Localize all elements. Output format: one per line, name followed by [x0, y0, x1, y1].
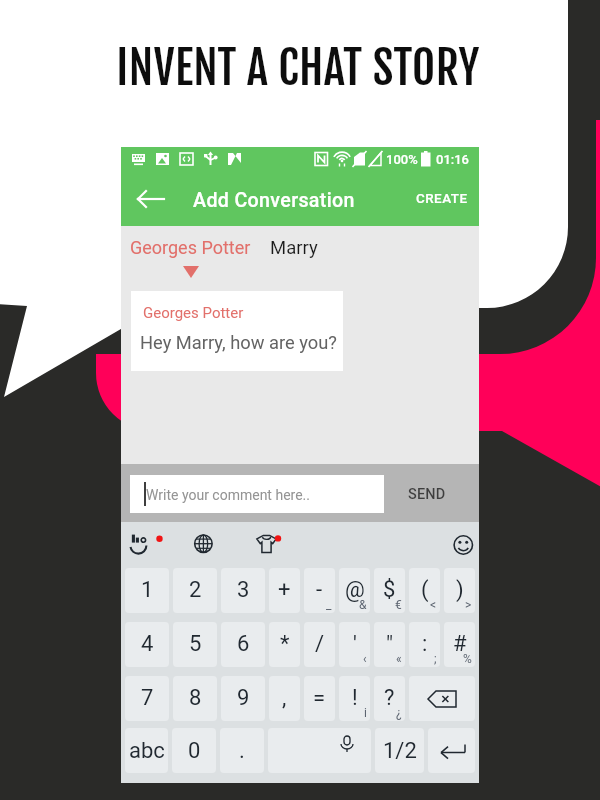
staticText: abc: [129, 738, 165, 764]
button[interactable]: @: [339, 568, 370, 613]
button[interactable]: Marry: [267, 237, 321, 259]
button[interactable]: Keyboard settings: [126, 528, 166, 556]
staticText: /: [315, 631, 325, 657]
staticText: Georges Potter: [130, 237, 251, 258]
button[interactable]: =: [304, 676, 335, 721]
staticText: 9: [237, 685, 250, 711]
button[interactable]: ): [444, 568, 475, 613]
staticText: ;: [434, 652, 437, 666]
button[interactable]: 3: [221, 568, 265, 613]
staticText: <: [430, 598, 437, 612]
staticText: 1/2: [383, 738, 417, 764]
staticText: +: [278, 577, 291, 603]
button[interactable]: Backspace: [409, 676, 475, 721]
staticText: .: [239, 738, 245, 764]
staticText: 7: [141, 685, 154, 711]
staticText: 3: [237, 577, 250, 603]
button[interactable]: CREATE: [405, 181, 479, 217]
button[interactable]: ?: [374, 676, 405, 721]
button[interactable]: Back: [135, 183, 167, 215]
button[interactable]: 6: [221, 622, 265, 667]
staticText: #: [453, 631, 467, 657]
staticText: CREATE: [416, 191, 468, 207]
button[interactable]: #: [444, 622, 475, 667]
staticText: i: [364, 706, 367, 720]
staticText: 1: [141, 577, 154, 603]
button[interactable]: 4: [125, 622, 169, 667]
button[interactable]: 8: [173, 676, 217, 721]
staticText: SEND: [408, 486, 446, 503]
staticText: Marry: [270, 237, 318, 259]
button[interactable]: !: [339, 676, 370, 721]
button[interactable]: $: [374, 568, 405, 613]
button[interactable]: SEND: [402, 482, 452, 507]
button[interactable]: Change language: [183, 530, 215, 558]
staticText: 2: [189, 577, 202, 603]
button[interactable]: Emoji: [451, 530, 481, 560]
staticText: =: [313, 685, 326, 711]
button[interactable]: abc: [125, 728, 168, 773]
button[interactable]: ": [374, 622, 405, 667]
staticText: Write your comment here..: [146, 487, 310, 503]
staticText: :: [422, 631, 428, 657]
button[interactable]: 2: [173, 568, 217, 613]
button[interactable]: Space: [268, 728, 371, 773]
staticText: INVENT A CHAT STORY: [0, 40, 598, 97]
button[interactable]: 0: [172, 728, 216, 773]
button[interactable]: ': [339, 622, 370, 667]
staticText: @: [345, 577, 365, 603]
staticText: &: [359, 598, 367, 612]
staticText: $: [383, 577, 396, 603]
staticText: Add Conversation: [193, 189, 355, 212]
staticText: 6: [237, 631, 250, 657]
button[interactable]: Georges Potter: [131, 291, 343, 371]
staticText: ,: [282, 685, 287, 711]
staticText: ?: [384, 685, 395, 711]
staticText: %: [463, 652, 472, 666]
staticText: Georges Potter: [143, 304, 244, 322]
staticText: 4: [141, 631, 154, 657]
button[interactable]: 9: [221, 676, 265, 721]
staticText: 8: [189, 685, 202, 711]
button[interactable]: .: [220, 728, 264, 773]
button[interactable]: Themes: [249, 528, 289, 558]
staticText: 01:16: [436, 152, 470, 167]
button[interactable]: 1/2: [375, 728, 424, 773]
button[interactable]: Write your comment here..: [130, 475, 384, 513]
staticText: !: [352, 685, 358, 711]
staticText: ): [456, 577, 464, 603]
staticText: ‹: [363, 652, 367, 666]
button[interactable]: Enter: [428, 728, 475, 773]
button[interactable]: :: [409, 622, 440, 667]
staticText: *: [280, 631, 290, 657]
button[interactable]: 7: [125, 676, 169, 721]
staticText: >: [465, 598, 472, 612]
staticText: ': [353, 631, 357, 657]
button[interactable]: -: [304, 568, 335, 613]
button[interactable]: Georges Potter: [127, 237, 254, 278]
staticText: (: [421, 577, 429, 603]
staticText: Hey Marry, how are you?: [140, 332, 337, 353]
staticText: 100%: [386, 152, 418, 167]
button[interactable]: 5: [173, 622, 217, 667]
staticText: 5: [189, 631, 202, 657]
staticText: ¿: [396, 706, 402, 720]
staticText: €: [395, 598, 402, 612]
button[interactable]: (: [409, 568, 440, 613]
staticText: _: [326, 598, 332, 612]
button[interactable]: *: [269, 622, 300, 667]
button[interactable]: +: [269, 568, 300, 613]
button[interactable]: /: [304, 622, 335, 667]
staticText: -: [316, 577, 323, 603]
staticText: «: [396, 652, 402, 666]
staticText: ": [386, 631, 394, 657]
staticText: 0: [188, 738, 201, 764]
button[interactable]: 1: [125, 568, 169, 613]
button[interactable]: ,: [269, 676, 300, 721]
